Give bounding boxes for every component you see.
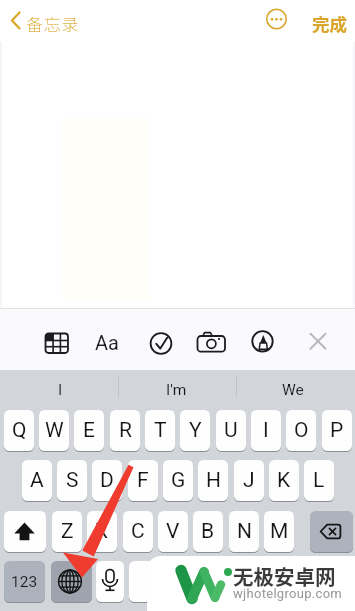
button[interactable]: Aa (95, 331, 119, 354)
button[interactable]: C (123, 511, 153, 552)
button[interactable]: 备忘录 (0, 0, 120, 41)
staticText: R (119, 418, 132, 443)
staticText: D (100, 468, 114, 493)
staticText: 备忘录 (26, 11, 80, 36)
button[interactable] (249, 330, 275, 356)
button[interactable]: X (87, 511, 117, 552)
staticText: M (270, 519, 289, 544)
button[interactable]: P (322, 410, 352, 451)
button[interactable]: W (39, 410, 69, 451)
staticText: We (282, 381, 304, 399)
staticText: T (154, 418, 167, 443)
staticText: J (243, 468, 255, 493)
button[interactable]: E (74, 410, 104, 451)
staticText: N (237, 519, 252, 544)
button[interactable]: Y (180, 410, 210, 451)
staticText: wjhotelgroup.com (233, 586, 343, 601)
staticText: G (171, 468, 186, 493)
staticText: I'm (166, 381, 187, 399)
staticText: C (131, 519, 145, 544)
button[interactable]: A (22, 460, 52, 501)
button[interactable] (308, 332, 329, 353)
button[interactable]: S (57, 460, 87, 501)
button[interactable]: 123 (4, 561, 45, 602)
staticText: F (137, 468, 149, 493)
staticText: L (313, 468, 325, 493)
button[interactable]: D (92, 460, 122, 501)
staticText: V (166, 519, 180, 544)
button[interactable]: 完成 (305, 2, 355, 40)
button[interactable]: F (128, 460, 158, 501)
button[interactable] (310, 511, 353, 552)
button[interactable]: U (216, 410, 246, 451)
button[interactable]: T (145, 410, 175, 451)
button[interactable]: I (251, 410, 281, 451)
staticText: H (206, 468, 221, 493)
staticText: U (224, 418, 238, 443)
button[interactable] (96, 561, 124, 602)
staticText: S (66, 468, 79, 493)
button[interactable] (38, 330, 68, 356)
button[interactable]: M (264, 511, 294, 552)
button[interactable]: R (110, 410, 140, 451)
staticText: 无极安卓网 (233, 561, 336, 591)
staticText: P (330, 418, 344, 443)
button[interactable] (194, 330, 224, 356)
button[interactable] (258, 6, 287, 35)
staticText: O (294, 418, 309, 443)
staticText: 123 (11, 573, 38, 591)
button[interactable] (144, 330, 170, 356)
staticText: Z (61, 519, 74, 544)
button[interactable]: We (243, 370, 343, 410)
staticText: X (95, 519, 109, 544)
button[interactable]: B (193, 511, 223, 552)
button[interactable]: K (269, 460, 299, 501)
button[interactable]: V (158, 511, 188, 552)
staticText: E (83, 418, 95, 443)
button[interactable]: L (304, 460, 334, 501)
staticText: Y (189, 418, 202, 443)
button[interactable]: G (163, 460, 193, 501)
button[interactable]: H (198, 460, 228, 501)
staticText: Q (12, 418, 27, 443)
button[interactable]: I'm (126, 370, 226, 410)
button[interactable] (4, 511, 46, 552)
button[interactable] (253, 561, 352, 602)
button[interactable]: Z (52, 511, 82, 552)
button[interactable]: J (234, 460, 264, 501)
button[interactable] (129, 561, 248, 602)
staticText: I (263, 418, 269, 443)
button[interactable]: Q (4, 410, 34, 451)
staticText: A (30, 468, 44, 493)
staticText: B (201, 519, 215, 544)
staticText: W (45, 418, 64, 443)
button[interactable] (51, 561, 92, 602)
button[interactable]: O (286, 410, 316, 451)
button[interactable]: N (229, 511, 259, 552)
button[interactable]: I (10, 370, 110, 410)
staticText: K (277, 468, 291, 493)
staticText: 完成 (312, 11, 347, 36)
staticText: I (58, 381, 63, 399)
